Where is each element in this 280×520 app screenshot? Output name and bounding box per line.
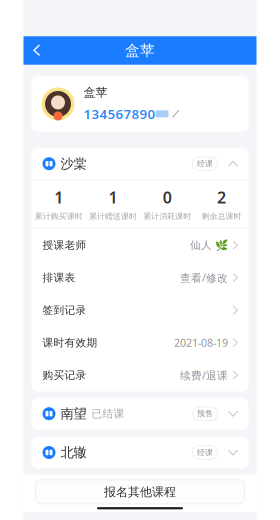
staticText: 剩余总课时 bbox=[201, 211, 241, 221]
button[interactable]: 购买记录 bbox=[31, 359, 248, 391]
staticText: 授课老师 bbox=[42, 239, 86, 252]
staticText: 经课 bbox=[197, 159, 213, 169]
button[interactable]: 授课老师 bbox=[31, 229, 248, 261]
staticText: 盒苹 bbox=[125, 41, 155, 59]
staticText: 已结课 bbox=[91, 407, 124, 420]
staticText: 1 bbox=[108, 187, 117, 208]
staticText: 南望 bbox=[60, 405, 86, 422]
staticText: 134567890 bbox=[83, 105, 155, 123]
staticText: 预售 bbox=[197, 409, 213, 419]
staticText: 盒苹 bbox=[83, 85, 107, 100]
button[interactable]: 排课表 bbox=[31, 261, 248, 294]
button[interactable]: 南望 bbox=[31, 398, 248, 429]
button[interactable]: 课时有效期 bbox=[31, 326, 248, 359]
staticText: 排课表 bbox=[42, 271, 75, 284]
staticText: 累计购买课时 bbox=[35, 211, 83, 221]
button[interactable]: 签到记录 bbox=[31, 294, 248, 326]
staticText: 购买记录 bbox=[42, 369, 86, 382]
staticText: 0 bbox=[163, 187, 172, 208]
button[interactable]: Back bbox=[23, 36, 52, 65]
staticText: 北辙 bbox=[60, 444, 86, 461]
staticText: 经课 bbox=[197, 448, 213, 457]
staticText: 课时有效期 bbox=[42, 336, 97, 349]
staticText: 续费/退课 bbox=[180, 368, 228, 382]
button[interactable]: 北辙 bbox=[31, 437, 248, 468]
staticText: 1 bbox=[54, 187, 63, 208]
staticText: 2 bbox=[217, 187, 226, 208]
staticText: 报名其他课程 bbox=[104, 484, 176, 499]
staticText: 沙棠 bbox=[60, 155, 86, 172]
staticText: 查看/修改 bbox=[180, 271, 228, 285]
staticText: 仙人 🌿 bbox=[190, 239, 228, 252]
staticText: 累计消耗课时 bbox=[143, 211, 191, 221]
staticText: 累计赠送课时 bbox=[89, 211, 137, 221]
staticText: 签到记录 bbox=[42, 304, 86, 317]
staticText: 2021-08-19 bbox=[174, 336, 228, 350]
button[interactable]: 报名其他课程 bbox=[23, 480, 256, 504]
